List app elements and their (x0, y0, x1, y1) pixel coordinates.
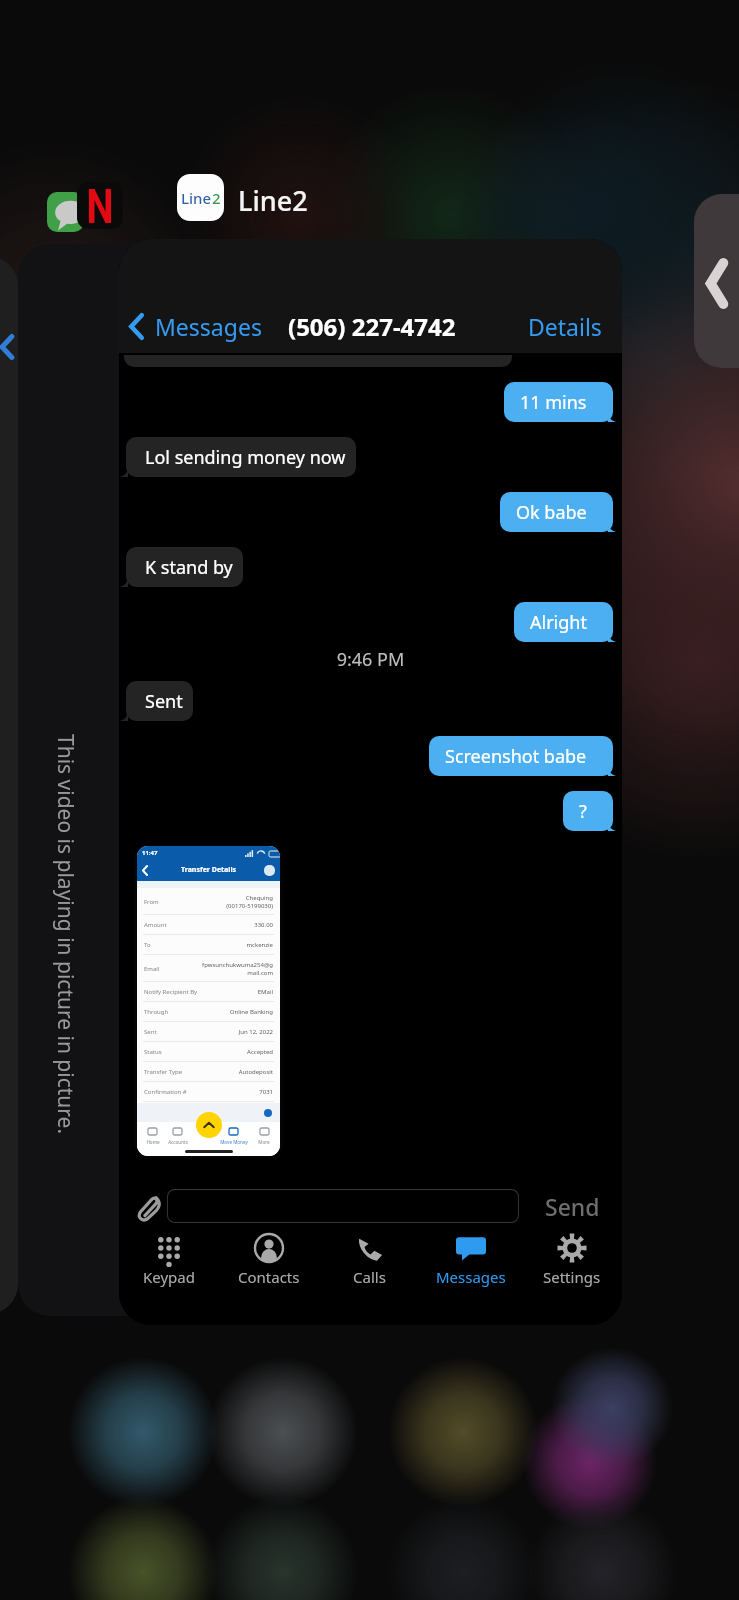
staticText: Online Banking (229, 1008, 273, 1016)
staticText: Chequing (245, 894, 273, 902)
button[interactable]: ? (563, 791, 613, 831)
staticText: Contacts (238, 1267, 300, 1287)
staticText: Confirmation # (144, 1088, 187, 1096)
button[interactable]: Attach (132, 1188, 168, 1224)
staticText: Sent (144, 1028, 157, 1036)
button[interactable]: K stand by (126, 547, 243, 587)
staticText: ? (579, 799, 587, 824)
staticText: Status (144, 1048, 162, 1056)
button[interactable] (167, 1189, 519, 1223)
staticText: To (144, 941, 151, 949)
button[interactable]: 11 mins (504, 382, 613, 422)
staticText: EMail (257, 988, 273, 996)
staticText: Messages (436, 1267, 506, 1287)
button[interactable]: Send (545, 1191, 622, 1222)
staticText: Amount (144, 921, 167, 929)
staticText: 7031 (259, 1088, 273, 1096)
staticText: Line (181, 188, 212, 208)
staticText: 9:46 PM (119, 647, 622, 672)
button[interactable]: Calls (319, 1231, 420, 1291)
staticText: (00170-5199030) (226, 902, 273, 910)
staticText: Jun 12, 2022 (238, 1028, 273, 1036)
staticText: Accepted (247, 1048, 273, 1056)
staticText: 11:47 (142, 849, 158, 857)
button[interactable]: Settings (521, 1231, 622, 1291)
button[interactable]: Screenshot babe (429, 736, 613, 776)
staticText: 11 mins (520, 390, 587, 415)
staticText: This video is playing in picture in pict… (51, 734, 80, 1135)
staticText: Autodeposit (238, 1068, 273, 1076)
staticText: Home (146, 1139, 160, 1145)
staticText: Lol sending money now (145, 445, 346, 470)
staticText: 2 (212, 188, 221, 208)
staticText: K stand by (145, 555, 233, 580)
staticText: Sent (145, 689, 183, 714)
button[interactable]: Messages (119, 311, 270, 342)
staticText: Move Money (220, 1139, 248, 1145)
button[interactable]: Screenshot attachment (134, 844, 283, 1158)
staticText: Transfer Details (181, 865, 236, 875)
staticText: Settings (543, 1267, 601, 1287)
staticText: More (258, 1139, 270, 1145)
staticText: (506) 227-4742 (288, 310, 456, 343)
staticText: 330.00 (254, 921, 273, 929)
staticText: Notify Recipient By (144, 988, 198, 996)
staticText: Through (144, 1008, 169, 1016)
staticText: Email (144, 965, 160, 973)
staticText: mail.com (247, 969, 273, 977)
button[interactable]: Messages (420, 1231, 521, 1291)
staticText: Calls (353, 1267, 386, 1287)
button[interactable]: Keypad (119, 1231, 219, 1291)
staticText: Alright (530, 610, 587, 635)
button[interactable]: Contacts (219, 1231, 319, 1291)
staticText: mckenzie (246, 941, 273, 949)
staticText: Ok babe (516, 500, 587, 525)
staticText: fpwsunchukwuma254@g (202, 961, 273, 969)
staticText: From (144, 898, 159, 906)
button[interactable]: Ok babe (500, 492, 613, 532)
staticText: Transfer Type (144, 1068, 183, 1076)
staticText: Keypad (143, 1267, 195, 1287)
staticText: Messages (155, 311, 262, 342)
staticText: Accounts (168, 1139, 188, 1145)
button[interactable]: Alright (514, 602, 613, 642)
button[interactable]: Details (528, 311, 622, 342)
button[interactable]: Sent (126, 681, 193, 721)
staticText: Screenshot babe (445, 744, 587, 769)
staticText: Line2 (238, 182, 308, 219)
button[interactable]: Lol sending money now (126, 437, 356, 477)
